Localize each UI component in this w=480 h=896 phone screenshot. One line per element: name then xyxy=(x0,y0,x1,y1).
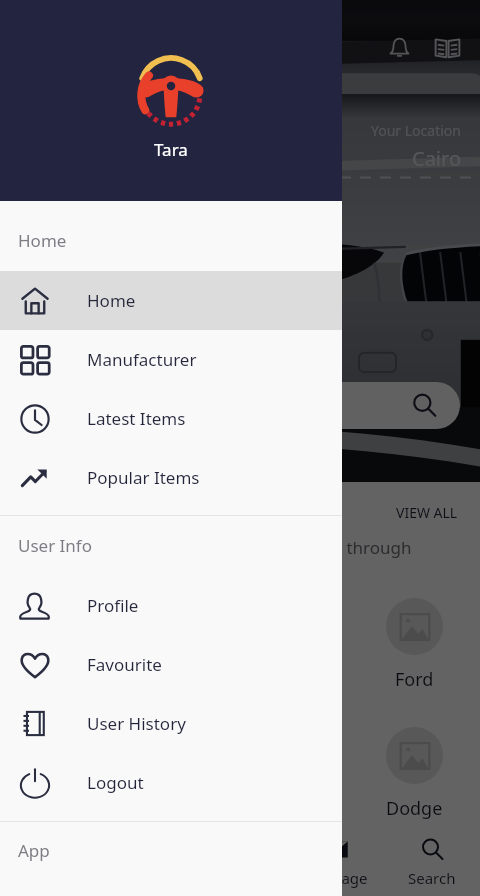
staticText: Favourite xyxy=(87,653,162,676)
button[interactable]: Opel xyxy=(11,727,121,821)
button[interactable]: User History xyxy=(0,694,342,753)
staticText: Manufacturer xyxy=(87,348,197,371)
button[interactable]: Home xyxy=(0,271,342,330)
staticText: Home xyxy=(87,289,136,312)
staticText: Search xyxy=(408,868,456,888)
button[interactable]: Favourite xyxy=(0,635,342,694)
staticText: User History xyxy=(87,712,186,735)
button[interactable]: Latest Items xyxy=(0,389,342,448)
staticText: Logout xyxy=(87,771,144,794)
button[interactable]: Ford xyxy=(359,598,469,692)
button[interactable]: Manufacturer xyxy=(0,330,342,389)
staticText: Message xyxy=(305,868,368,888)
staticText: Popular Items xyxy=(87,466,200,489)
staticText: Latest Items xyxy=(87,407,186,430)
button[interactable]: Logout xyxy=(0,753,342,812)
button[interactable]: Home xyxy=(0,828,96,896)
button[interactable]: Popular Items xyxy=(0,448,342,507)
staticText: Dodge xyxy=(386,796,443,821)
staticText: Ford xyxy=(395,667,434,692)
button[interactable]: Notifications xyxy=(382,30,416,64)
button[interactable]: Profile xyxy=(0,576,342,635)
button[interactable]: Message xyxy=(288,828,384,896)
staticText: Profile xyxy=(87,594,139,617)
staticText: VIEW ALL xyxy=(396,503,458,522)
button[interactable]: Kia xyxy=(11,598,121,692)
button[interactable]: Search xyxy=(384,828,480,896)
button[interactable]: Catalog xyxy=(430,30,464,64)
staticText: App xyxy=(18,839,50,862)
button[interactable]: Dodge xyxy=(359,727,469,821)
button[interactable]: Search xyxy=(130,382,460,429)
staticText: Your Location xyxy=(371,121,461,140)
staticText: Browse car brands and find yours simply … xyxy=(18,536,412,559)
staticText: Home xyxy=(18,229,67,252)
staticText: Cairo xyxy=(412,145,461,172)
staticText: Tara xyxy=(154,138,188,161)
staticText: User Info xyxy=(18,534,93,557)
